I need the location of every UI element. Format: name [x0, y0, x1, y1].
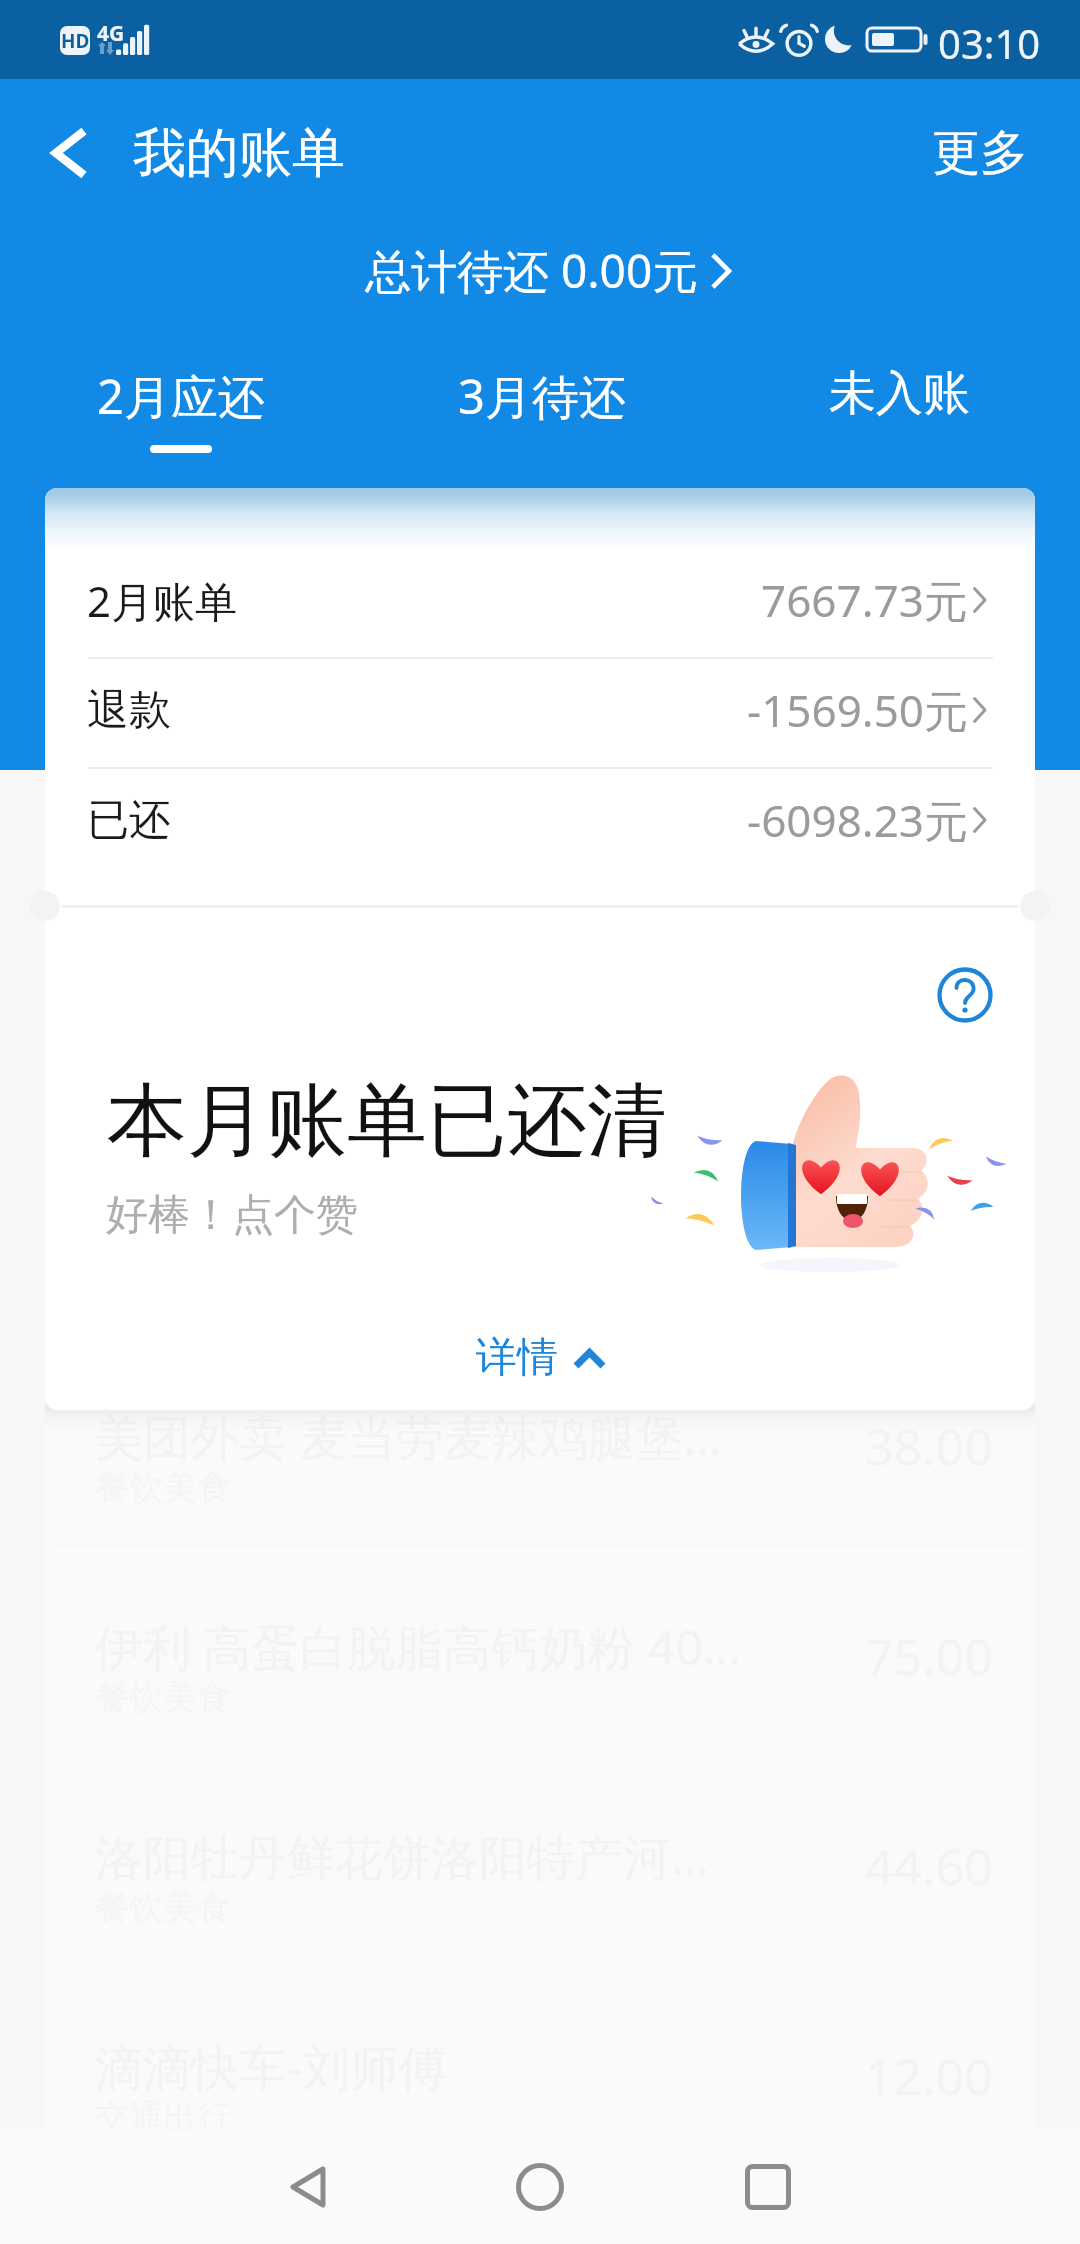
staticText: 未入账: [829, 364, 970, 423]
button[interactable]: 2月账单: [45, 545, 1035, 655]
staticText: 4G: [97, 19, 125, 48]
button[interactable]: Home: [485, 2129, 595, 2244]
staticText: 详情: [476, 1332, 558, 1384]
staticText: 更多: [932, 123, 1028, 183]
staticText: 退款: [87, 684, 171, 737]
staticText: 已还: [87, 794, 171, 847]
staticText: 总计待还 0.00元: [365, 239, 699, 302]
staticText: 我的账单: [133, 120, 345, 187]
staticText: 好棒！点个赞: [106, 1189, 358, 1242]
staticText: 2月账单: [87, 572, 238, 629]
staticText: 7667.73元: [761, 570, 968, 630]
staticText: HD: [61, 28, 90, 54]
staticText: 03:10: [938, 16, 1041, 70]
button[interactable]: Back: [255, 2129, 365, 2244]
button[interactable]: 总计待还 0.00元: [345, 225, 753, 316]
button[interactable]: 未入账: [779, 355, 1019, 465]
staticText: 38.00: [865, 1412, 993, 1480]
button[interactable]: Recents: [713, 2129, 823, 2244]
button[interactable]: 3月待还: [422, 355, 662, 465]
button[interactable]: 详情: [436, 1316, 644, 1400]
button[interactable]: 2月应还: [61, 355, 301, 465]
staticText: 美团外卖 麦当劳麦辣鸡腿堡…: [95, 1404, 722, 1470]
button[interactable]: Back: [22, 105, 118, 201]
staticText: 本月账单已还清: [107, 1071, 667, 1172]
staticText: 3月待还: [458, 364, 626, 428]
button[interactable]: Help: [925, 955, 1005, 1035]
staticText: 2月应还: [97, 364, 265, 428]
button[interactable]: 退款: [45, 655, 1035, 765]
button[interactable]: 已还: [45, 765, 1035, 875]
staticText: -1569.50元: [747, 680, 968, 740]
button[interactable]: 更多: [905, 107, 1055, 199]
staticText: -6098.23元: [747, 790, 968, 850]
